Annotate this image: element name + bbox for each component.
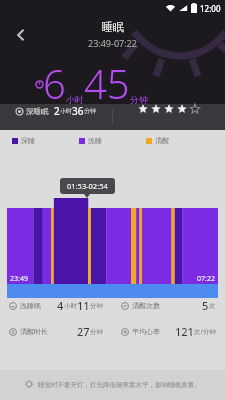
staticText: 5 bbox=[202, 298, 209, 313]
staticText: 11 bbox=[77, 298, 90, 313]
staticText: 浅睡眠 bbox=[20, 301, 41, 310]
staticText: 2 bbox=[54, 104, 60, 118]
staticText: 12:00 bbox=[200, 3, 221, 14]
button[interactable]: 深睡 bbox=[12, 136, 79, 145]
staticText: 6 bbox=[43, 56, 66, 110]
button[interactable]: 睡觉时不要开灯，灯光降低褪黑素水平，影响睡眠质量。 bbox=[0, 370, 225, 400]
staticText: 睡眠 bbox=[102, 20, 124, 34]
staticText: 23:49-07:22 bbox=[88, 37, 137, 49]
staticText: 清醒 bbox=[155, 136, 169, 145]
staticText: 次 bbox=[209, 302, 216, 310]
staticText: 121 bbox=[175, 324, 194, 339]
staticText: 小时 bbox=[64, 302, 77, 310]
staticText: 次/分钟 bbox=[194, 327, 216, 336]
button[interactable]: 清醒 bbox=[146, 136, 213, 145]
staticText: 清醒时长 bbox=[20, 327, 48, 336]
button[interactable]: 清醒次数 bbox=[121, 298, 216, 313]
staticText: 深睡眠 bbox=[26, 107, 49, 116]
button[interactable]: Back bbox=[6, 20, 36, 50]
button[interactable] bbox=[113, 104, 225, 114]
staticText: 分钟 bbox=[90, 302, 103, 310]
staticText: 浅睡 bbox=[88, 136, 102, 145]
staticText: 07:22 bbox=[197, 274, 215, 284]
staticText: 小时 bbox=[60, 107, 72, 115]
button[interactable]: 平均心率 bbox=[121, 324, 216, 339]
button[interactable] bbox=[7, 198, 218, 298]
staticText: 分钟 bbox=[130, 94, 148, 105]
staticText: 清醒次数 bbox=[132, 301, 160, 310]
button[interactable]: 深睡眠 bbox=[0, 104, 112, 118]
button[interactable]: 浅睡 bbox=[79, 136, 146, 145]
button[interactable]: 清醒时长 bbox=[9, 324, 103, 339]
staticText: 睡觉时不要开灯，灯光降低褪黑素水平，影响睡眠质量。 bbox=[38, 381, 201, 389]
button[interactable]: 浅睡眠 bbox=[9, 298, 103, 313]
staticText: 4 bbox=[57, 298, 64, 313]
staticText: 分钟 bbox=[84, 107, 96, 115]
staticText: 小时 bbox=[66, 94, 84, 105]
button[interactable]: 01:53-02:54 bbox=[67, 181, 108, 191]
staticText: 23:49 bbox=[10, 274, 28, 284]
staticText: 36 bbox=[72, 104, 84, 118]
staticText: 分钟 bbox=[90, 328, 103, 336]
staticText: 01:53-02:54 bbox=[67, 181, 108, 191]
staticText: 27 bbox=[77, 324, 90, 339]
staticText: 平均心率 bbox=[132, 327, 160, 336]
staticText: 深睡 bbox=[21, 136, 35, 145]
staticText: 45 bbox=[84, 56, 130, 110]
